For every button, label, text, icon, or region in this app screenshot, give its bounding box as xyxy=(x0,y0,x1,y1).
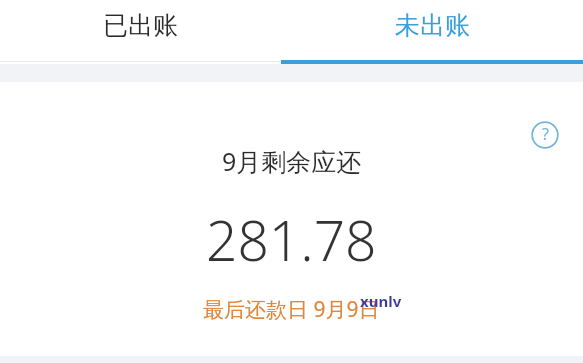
staticText: xunlv xyxy=(360,291,402,311)
staticText: 281.78 xyxy=(206,202,377,277)
button[interactable]: 未出账 xyxy=(281,0,583,62)
staticText: 最后还款日 9月9日 xyxy=(203,295,380,324)
button[interactable]: Help xyxy=(531,121,559,149)
staticText: 未出账 xyxy=(395,10,470,41)
staticText: 已出账 xyxy=(103,10,178,41)
staticText: ? xyxy=(542,123,549,145)
button[interactable]: 已出账 xyxy=(0,0,281,62)
staticText: 9月剩余应还 xyxy=(222,144,362,178)
